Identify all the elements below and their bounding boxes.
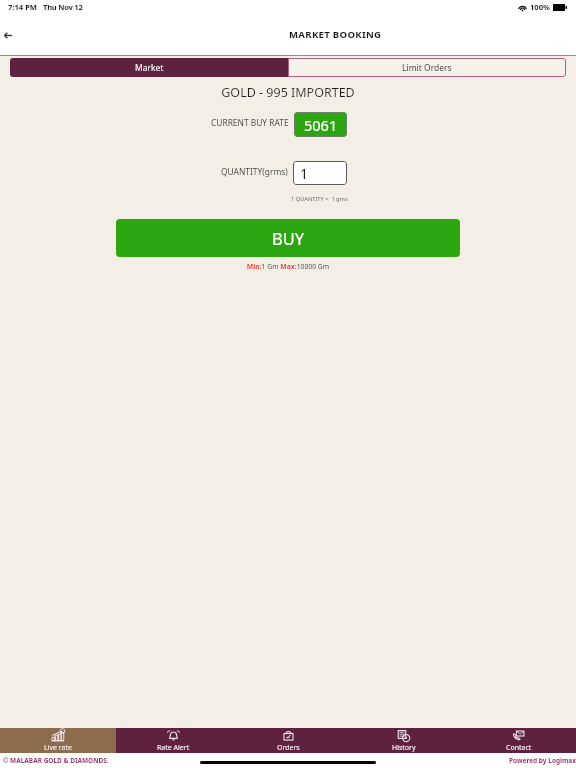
staticText: BUY xyxy=(272,227,305,249)
staticText: 100% xyxy=(530,2,550,12)
staticText: Thu Nov 12 xyxy=(43,2,83,12)
button[interactable]: 1 xyxy=(293,161,347,185)
staticText: © MALABAR GOLD & DIAMONDS. xyxy=(3,756,109,765)
button[interactable]: Rate Alert xyxy=(116,728,231,753)
staticText: Powered by Logimax xyxy=(509,756,576,765)
staticText: CURRENT BUY RATE xyxy=(211,117,289,128)
button[interactable]: BUY xyxy=(116,219,460,257)
button[interactable]: Live rate xyxy=(0,728,116,753)
staticText: MARKET BOOKING xyxy=(289,28,382,41)
button[interactable]: Orders xyxy=(231,728,346,753)
staticText: QUANTITY(grms) xyxy=(221,166,288,177)
staticText: Orders xyxy=(277,743,300,753)
staticText: Market xyxy=(135,62,164,74)
button[interactable]: Limit Orders xyxy=(288,58,566,77)
button[interactable]: Market xyxy=(10,58,288,77)
staticText: GOLD - 995 IMPORTED xyxy=(0,84,576,101)
staticText: History xyxy=(392,743,416,753)
staticText: 5061 xyxy=(304,115,338,135)
button[interactable]: Back xyxy=(0,25,18,45)
staticText: Min:1 Gm Max:10000 Gm xyxy=(0,262,576,271)
staticText: Limit Orders xyxy=(402,62,452,74)
button[interactable]: History xyxy=(346,728,461,753)
staticText: Live rate xyxy=(44,743,72,753)
staticText: Rate Alert xyxy=(157,743,190,753)
staticText: 1 QUANTITY = 1 gms xyxy=(291,195,348,203)
staticText: Contact xyxy=(506,743,532,753)
staticText: 1 xyxy=(300,164,309,183)
button[interactable]: Contact xyxy=(461,728,576,753)
button[interactable]: 5061 xyxy=(294,112,347,137)
staticText: 7:14 PM xyxy=(8,2,38,12)
